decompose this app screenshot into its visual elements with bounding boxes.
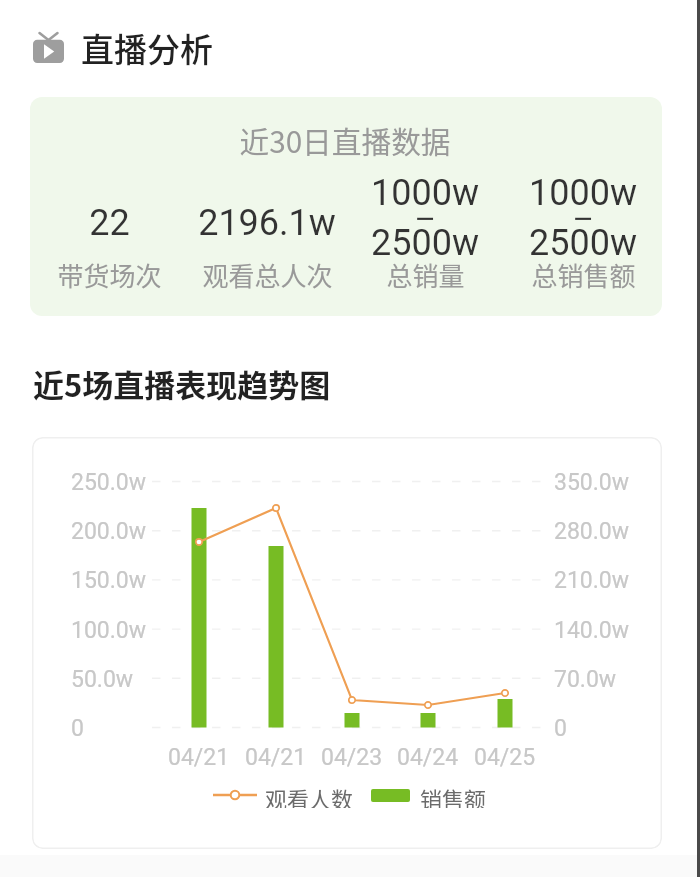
staticText: 1000w － 2500w	[529, 172, 637, 256]
staticText: 总销售额	[531, 256, 636, 294]
button[interactable]: Live broadcast	[33, 33, 64, 63]
staticText: 350.0w	[554, 469, 630, 496]
staticText: 50.0w	[71, 666, 134, 693]
staticText: 140.0w	[554, 617, 630, 644]
staticText: 100.0w	[71, 617, 147, 644]
staticText: 70.0w	[554, 666, 617, 693]
staticText: 04/25	[474, 744, 536, 771]
staticText: 近30日直播数据	[30, 119, 661, 162]
staticText: 04/23	[321, 744, 383, 771]
staticText: 带货场次	[57, 256, 162, 294]
staticText: 销售额	[420, 782, 487, 808]
button[interactable]: 观看人数	[213, 782, 354, 808]
staticText: 0	[71, 715, 84, 742]
staticText: 200.0w	[71, 518, 147, 545]
button[interactable]: 近30日直播数据	[30, 97, 662, 316]
staticText: 210.0w	[554, 567, 630, 594]
staticText: 2196.1w	[198, 202, 336, 244]
staticText: 总销量	[386, 256, 465, 294]
staticText: 250.0w	[71, 469, 147, 496]
staticText: 280.0w	[554, 518, 630, 545]
staticText: 观看人数	[265, 782, 354, 808]
staticText: 04/21	[245, 744, 307, 771]
button[interactable]: 销售额	[371, 782, 487, 808]
staticText: 150.0w	[71, 567, 147, 594]
staticText: 近5场直播表现趋势图	[33, 361, 331, 406]
staticText: 04/21	[168, 744, 230, 771]
staticText: 04/24	[397, 744, 459, 771]
staticText: 1000w － 2500w	[371, 172, 479, 256]
staticText: 0	[554, 715, 567, 742]
staticText: 22	[89, 202, 130, 244]
staticText: 直播分析	[81, 24, 213, 72]
staticText: 观看总人次	[202, 256, 333, 294]
button[interactable]: 250.0w	[32, 437, 662, 849]
